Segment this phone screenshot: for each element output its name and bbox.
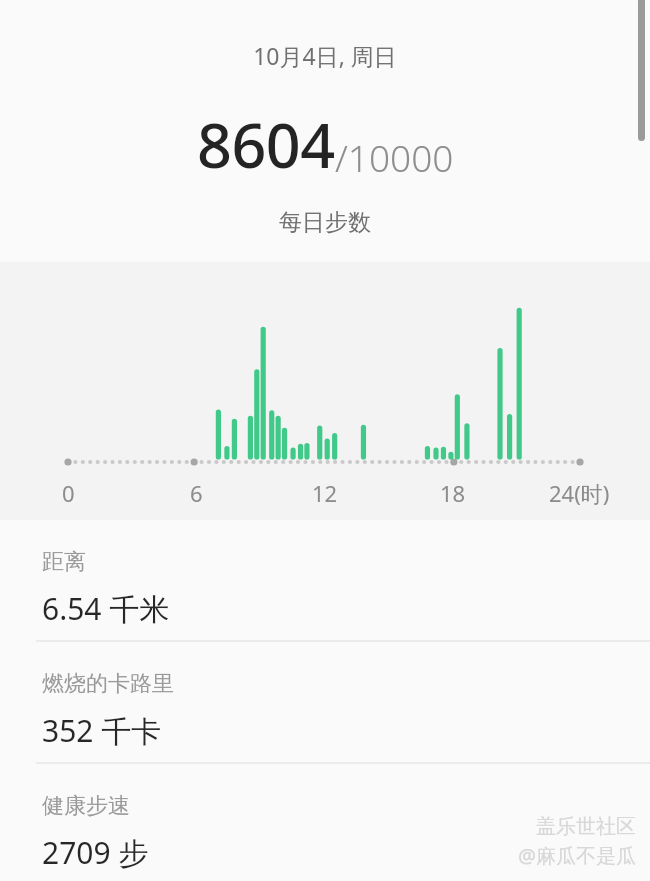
staticText: 每日步数 — [279, 208, 371, 237]
staticText: 健康步速 — [42, 792, 130, 820]
button[interactable]: 距离 — [0, 520, 650, 640]
button[interactable]: 10月4日, 周日 — [0, 0, 650, 262]
staticText: 盖乐世社区 — [536, 814, 636, 839]
staticText: 6 — [190, 478, 203, 508]
staticText: 0 — [62, 478, 75, 508]
staticText: 12 — [312, 478, 338, 508]
staticText: /10000 — [335, 132, 454, 182]
staticText: 8604 — [197, 103, 335, 186]
staticText: 距离 — [42, 548, 86, 576]
button[interactable]: 0 — [0, 262, 650, 520]
staticText: 18 — [440, 478, 466, 508]
staticText: @麻瓜不是瓜 — [518, 842, 636, 869]
staticText: 352 千卡 — [42, 710, 162, 751]
button[interactable]: 健康步速 — [0, 764, 650, 881]
staticText: 10月4日, 周日 — [253, 40, 397, 71]
staticText: 燃烧的卡路里 — [42, 670, 174, 698]
staticText: 24(时) — [549, 478, 610, 508]
staticText: 2709 步 — [42, 832, 149, 873]
button[interactable]: 燃烧的卡路里 — [0, 642, 650, 762]
staticText: 6.54 千米 — [42, 588, 170, 629]
